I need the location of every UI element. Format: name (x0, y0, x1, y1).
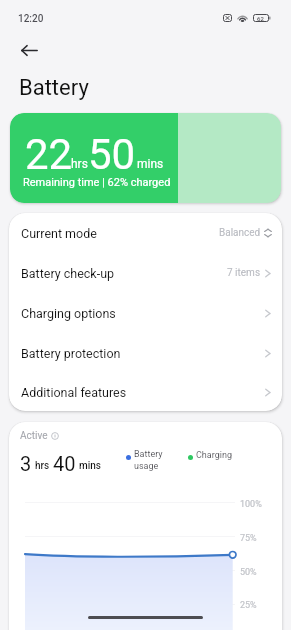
staticText: mins (79, 460, 101, 472)
button[interactable]: Back (13, 34, 45, 66)
staticText: Battery check-up (21, 266, 115, 281)
button[interactable]: Battery protection (9, 333, 282, 373)
staticText: Active (20, 430, 48, 442)
staticText: 40 (53, 452, 76, 475)
staticText: 62 (257, 15, 264, 22)
staticText: 100% (240, 499, 262, 510)
button[interactable]: Battery check-up (9, 253, 282, 293)
staticText: 75% (240, 533, 257, 544)
button[interactable]: 22 (10, 113, 281, 203)
staticText: Current mode (21, 226, 97, 241)
staticText: hrs (71, 157, 88, 171)
button[interactable]: Charging options (9, 293, 282, 333)
staticText: Battery (19, 75, 89, 101)
staticText: mins (137, 157, 164, 171)
button[interactable]: Current mode (9, 213, 282, 253)
staticText: Battery usage (134, 449, 163, 471)
staticText: Remaining time | 62% charged (23, 176, 171, 189)
staticText: Charging options (21, 306, 116, 321)
staticText: hrs (35, 460, 50, 472)
staticText: 50% (240, 567, 257, 578)
staticText: Battery protection (21, 346, 121, 361)
staticText: 25% (240, 600, 257, 611)
staticText: 50 (88, 130, 136, 179)
staticText: Charging (196, 450, 232, 461)
staticText: 12:20 (18, 13, 44, 25)
staticText: 22 (25, 130, 73, 179)
staticText: Additional features (21, 385, 127, 400)
staticText: 3 (20, 452, 32, 475)
staticText: 7 items (227, 267, 261, 279)
button[interactable]: Additional features (9, 373, 282, 411)
staticText: Balanced (219, 227, 261, 239)
